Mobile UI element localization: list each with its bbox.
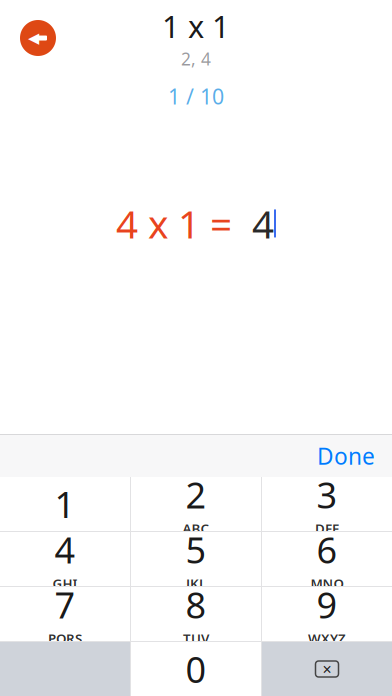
staticText: × [322,658,331,680]
button[interactable]: 4 [0,532,130,586]
staticText: ABC [182,520,209,537]
staticText: 1 / 10 [168,82,224,110]
button[interactable]: 0 [131,642,261,696]
staticText: 3 [316,471,337,518]
staticText: 4 x 1 = [116,198,242,249]
staticText: 1 x 1 [162,6,230,46]
button[interactable]: Back [0,20,66,56]
staticText: 5 [185,526,206,573]
button[interactable]: 1 [0,477,130,531]
staticText: 0 [185,645,206,693]
button[interactable]: 9 [262,587,392,641]
button[interactable]: Done [300,432,392,480]
staticText: JKL [186,575,206,592]
staticText: 2, 4 [181,47,211,70]
button[interactable]: 2 [131,477,261,531]
button[interactable]: 6 [262,532,392,586]
staticText: MNO [310,575,343,592]
staticText: GHI [52,575,77,592]
button[interactable]: 7 [0,587,130,641]
staticText: WXYZ [308,630,346,647]
staticText: 6 [316,526,337,573]
button[interactable]: Delete [262,642,392,696]
staticText: Done [317,441,375,471]
staticText: 2 [185,471,206,518]
staticText: 7 [54,581,75,628]
staticText: TUV [183,630,209,647]
staticText: PQRS [48,630,82,647]
button[interactable]: 3 [262,477,392,531]
staticText: 1 [54,480,75,528]
staticText: 4 [54,526,75,573]
staticText: 4 [242,198,274,249]
staticText: 8 [185,581,206,628]
button[interactable]: 5 [131,532,261,586]
staticText: DEF [315,520,339,537]
button[interactable]: 8 [131,587,261,641]
staticText: ◀ [28,30,39,46]
staticText: 9 [316,581,337,628]
